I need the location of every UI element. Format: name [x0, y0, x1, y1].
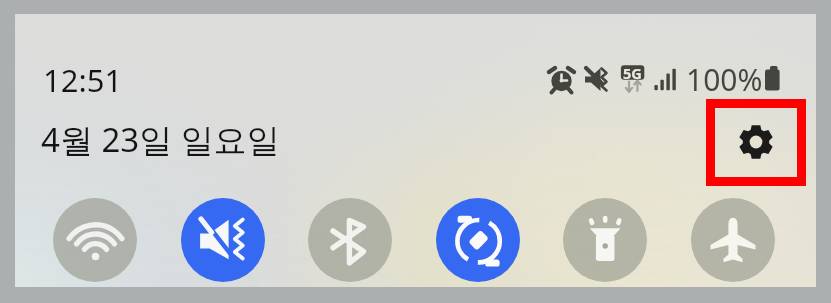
staticText: 4월 23일 일요일: [41, 117, 280, 162]
staticText: 100%: [686, 59, 763, 100]
button[interactable]: Auto rotate: [436, 198, 520, 282]
button[interactable]: Airplane mode: [691, 198, 775, 282]
button[interactable]: Bluetooth: [308, 198, 392, 282]
button[interactable]: Settings: [728, 114, 784, 170]
button[interactable]: Sound mode: [181, 198, 265, 282]
button[interactable]: Wi-Fi: [53, 198, 137, 282]
staticText: 12:51: [43, 59, 123, 101]
staticText: 5G: [623, 63, 642, 83]
button[interactable]: Flashlight: [563, 198, 647, 282]
